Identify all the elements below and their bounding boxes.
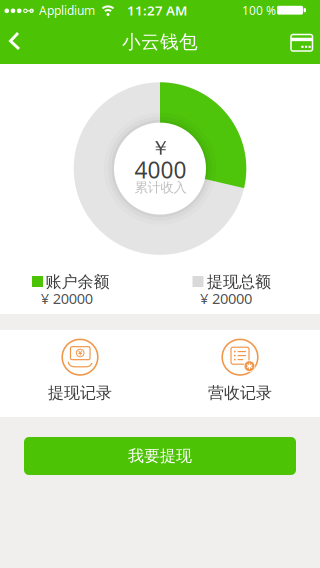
staticText: ¥ 20000 xyxy=(200,289,252,308)
staticText: ¥ 20000 xyxy=(41,289,93,308)
staticText: 累计收入 xyxy=(134,179,186,196)
staticText: 提现记录 xyxy=(48,383,112,403)
staticText: 11:27 AM xyxy=(127,1,187,19)
staticText: 营收记录 xyxy=(208,383,272,403)
button[interactable]: 营收记录 xyxy=(208,338,272,403)
staticText: 小云钱包 xyxy=(122,30,198,53)
button[interactable]: 提现记录 xyxy=(48,338,112,403)
button[interactable]: 我要提现 xyxy=(24,437,296,475)
staticText: 提现总额 xyxy=(207,272,271,292)
staticText: ￥ xyxy=(150,136,170,160)
button[interactable]: Bank cards xyxy=(284,25,320,61)
staticText: 4000 xyxy=(134,154,186,185)
staticText: Applidium xyxy=(39,2,95,18)
staticText: 账户余额 xyxy=(45,272,109,292)
staticText: 100 % xyxy=(242,2,276,18)
button[interactable]: Back xyxy=(0,25,33,57)
staticText: 我要提现 xyxy=(128,446,192,466)
